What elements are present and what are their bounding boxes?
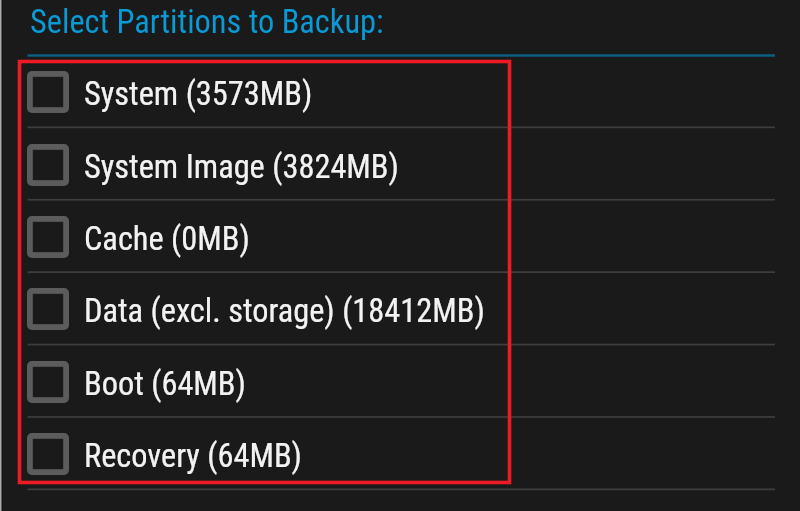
button[interactable]: Toggle Recovery (64MB) xyxy=(0,417,800,489)
other: Toggle Boot (64MB) xyxy=(27,361,69,403)
other: Toggle Recovery (64MB) xyxy=(27,433,69,475)
staticText: Data (excl. storage) (18412MB) xyxy=(84,292,485,330)
staticText: Cache (0MB) xyxy=(84,220,250,258)
button[interactable]: Toggle Cache (0MB) xyxy=(0,200,800,272)
other: Toggle System (3573MB) xyxy=(27,71,69,113)
staticText: Boot (64MB) xyxy=(84,365,246,403)
button[interactable]: Toggle System Image (3824MB) xyxy=(0,128,800,200)
button[interactable]: Toggle Data (excl. storage) (18412MB) xyxy=(0,272,800,344)
button[interactable]: Select Partitions to Backup: xyxy=(30,3,384,41)
button[interactable]: Toggle Boot (64MB) xyxy=(0,345,800,417)
other: Toggle System Image (3824MB) xyxy=(27,144,69,186)
button[interactable]: Toggle System (3573MB) xyxy=(0,55,800,127)
other: Toggle Cache (0MB) xyxy=(27,216,69,258)
other: Toggle Data (excl. storage) (18412MB) xyxy=(27,288,69,330)
staticText: Select Partitions to Backup: xyxy=(30,3,384,41)
staticText: System Image (3824MB) xyxy=(84,148,399,186)
staticText: System (3573MB) xyxy=(84,75,313,113)
staticText: Recovery (64MB) xyxy=(84,437,302,475)
